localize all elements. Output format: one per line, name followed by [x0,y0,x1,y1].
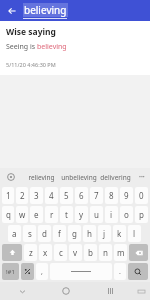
staticText: d [42,228,47,239]
staticText: g [72,228,77,239]
staticText: f [58,228,61,239]
button[interactable]: !#1 [2,263,19,280]
staticText: u [94,209,99,220]
button[interactable]: s [23,225,36,242]
button[interactable]: Home [44,282,88,300]
staticText: 0 [139,190,144,201]
staticText: believing [24,3,67,17]
button[interactable]: Search [128,263,148,280]
button[interactable]: More suggestions [134,168,150,186]
button[interactable]: Keyboard settings [0,168,22,186]
button[interactable]: z [24,244,37,261]
button[interactable]: y [75,206,88,223]
button[interactable]: Shift [2,244,22,261]
button[interactable]: 0 [135,187,148,204]
staticText: 4 [49,190,54,201]
staticText: Wise saying [6,26,56,38]
staticText: y [79,209,84,220]
staticText: , [41,267,43,277]
button[interactable]: x [39,244,52,261]
staticText: e [34,209,39,220]
staticText: c [59,247,63,258]
staticText: o [124,209,129,220]
staticText: 5 [64,190,69,201]
staticText: 9 [124,190,129,201]
staticText: unbelieving [61,173,97,182]
button[interactable]: q [2,206,14,223]
staticText: n [103,247,108,258]
staticText: !#1 [6,268,15,276]
button[interactable]: Back [5,4,19,18]
button[interactable]: g [68,225,81,242]
button[interactable]: f [53,225,66,242]
button[interactable]: 7 [90,187,103,204]
staticText: s [28,228,32,239]
staticText: v [73,247,78,258]
button[interactable]: t [60,206,73,223]
button[interactable]: 1 [2,187,14,204]
staticText: t [65,209,68,220]
staticText: delivering [100,173,131,182]
button[interactable]: w [16,206,28,223]
button[interactable]: v [69,244,82,261]
button[interactable]: relieving [22,168,60,186]
staticText: Seeing is [6,42,37,52]
staticText: believing [37,42,67,52]
button[interactable]: unbelieving [60,168,97,186]
staticText: x [43,247,48,258]
button[interactable]: m [114,244,127,261]
button[interactable]: believing [23,3,68,19]
staticText: p [139,209,144,220]
button[interactable]: Recents [88,282,132,300]
button[interactable]: Emoji [21,263,34,280]
staticText: i [110,209,113,220]
button[interactable]: c [54,244,67,261]
button[interactable]: . [114,263,126,280]
button[interactable]: n [99,244,112,261]
staticText: 6 [79,190,84,201]
button[interactable]: 9 [120,187,133,204]
staticText: relieving [28,173,55,182]
button[interactable]: j [98,225,111,242]
button[interactable]: b [84,244,97,261]
button[interactable]: 2 [16,187,28,204]
staticText: l [133,228,136,239]
staticText: 2 [20,190,25,201]
button[interactable]: 5 [60,187,73,204]
button[interactable]: delivering [97,168,134,186]
button[interactable]: a [8,225,21,242]
button[interactable]: Keyboard [132,282,150,300]
staticText: r [50,209,54,220]
staticText: . [119,267,121,277]
staticText: j [103,228,106,239]
button[interactable]: 3 [30,187,43,204]
staticText: h [87,228,92,239]
button[interactable]: d [38,225,51,242]
staticText: 8 [109,190,114,201]
button[interactable]: l [128,225,141,242]
button[interactable]: 8 [105,187,118,204]
button[interactable]: 4 [45,187,58,204]
button[interactable]: r [45,206,58,223]
staticText: b [88,247,93,258]
staticText: q [6,209,11,220]
button[interactable]: Backspace [129,244,148,261]
button[interactable]: , [36,263,48,280]
staticText: 3 [34,190,39,201]
staticText: m [117,247,125,258]
button[interactable]: o [120,206,133,223]
button[interactable]: h [83,225,96,242]
staticText: 7 [94,190,99,201]
button[interactable]: e [30,206,43,223]
staticText: k [117,228,122,239]
button[interactable]: u [90,206,103,223]
button[interactable]: Hide keyboard [0,282,44,300]
button[interactable]: 6 [75,187,88,204]
button[interactable]: p [135,206,148,223]
staticText: w [19,209,26,220]
staticText: a [12,228,17,239]
button[interactable]: k [113,225,126,242]
button[interactable]: i [105,206,118,223]
staticText: z [29,247,33,258]
button[interactable]: Space [50,263,112,280]
